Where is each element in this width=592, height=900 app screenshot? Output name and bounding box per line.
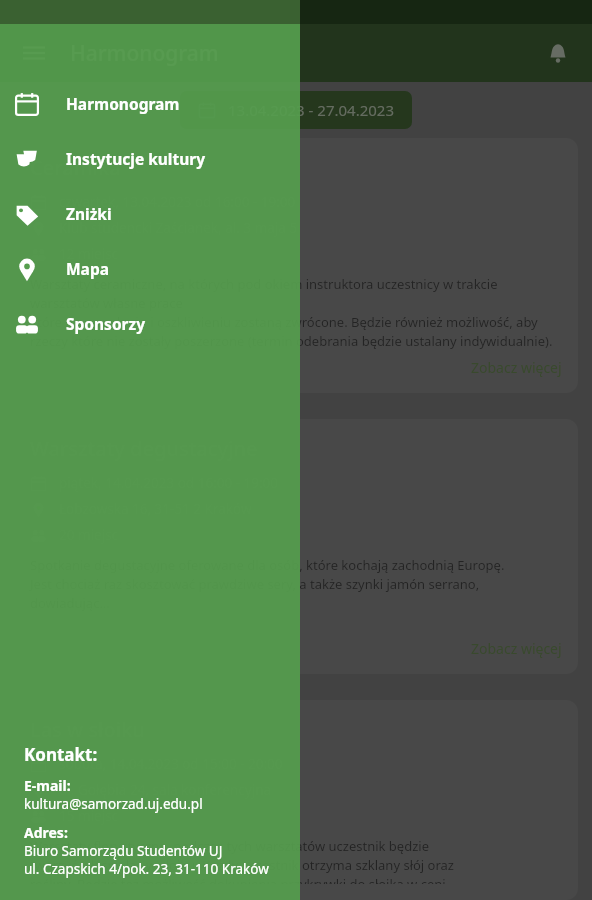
- button[interactable]: Ceramika: [14, 138, 578, 393]
- staticText: Sponsorzy: [66, 313, 145, 334]
- staticText: Instytucje kultury: [66, 148, 206, 169]
- button[interactable]: Sponsorzy: [0, 296, 300, 351]
- staticText: Klub studencki Zaścianek, al. 3 maja 5: [59, 219, 298, 237]
- button[interactable]: 13.04.2023 - 27.04.2023: [180, 91, 412, 129]
- staticText: ul. Gołębia 24, sala konferencyjna: [59, 781, 272, 799]
- button[interactable]: Instytucje kultury: [0, 131, 300, 186]
- button[interactable]: Harmonogram: [0, 76, 300, 131]
- staticText: Spotkanie degustacyjne oferowane dla osó…: [30, 556, 562, 612]
- staticText: ul. Czapskich 4/pok. 23, 31-110 Kraków: [24, 860, 269, 878]
- button[interactable]: Zobacz więcej: [471, 358, 562, 377]
- staticText: Warsztaty ceramiczne, na których pod oki…: [30, 275, 562, 350]
- button[interactable]: Warsztaty degustacyjne: [14, 419, 578, 674]
- button[interactable]: Mapa: [0, 241, 300, 296]
- button[interactable]: Zniżki: [0, 186, 300, 241]
- staticText: Adres:: [24, 823, 68, 842]
- button[interactable]: Notifications: [538, 33, 578, 73]
- staticText: Mapa: [66, 258, 109, 279]
- staticText: E-mail:: [24, 776, 71, 795]
- staticText: czwartek, 13.04.2023 od 16:00 - 19:00: [59, 193, 296, 211]
- staticText: Kontakt:: [24, 743, 98, 766]
- staticText: 13.04.2023 - 27.04.2023: [228, 100, 394, 120]
- staticText: kultura@samorzad.uj.edu.pl: [24, 795, 203, 813]
- staticText: Warsztaty florystyczne, podczas tych war…: [30, 837, 457, 884]
- staticText: Zniżki: [66, 203, 112, 224]
- staticText: Ceramika: [30, 154, 121, 181]
- button[interactable]: Zobacz więcej: [471, 639, 562, 658]
- staticText: sobota, 14.04.2023 od 15:00 - 20:00: [59, 755, 283, 773]
- button[interactable]: Las w słoiku: [14, 700, 578, 900]
- staticText: Biuro Samorządu Studentów UJ: [24, 842, 223, 860]
- staticText: 15 miejsc: [59, 807, 119, 825]
- staticText: Harmonogram: [66, 93, 180, 114]
